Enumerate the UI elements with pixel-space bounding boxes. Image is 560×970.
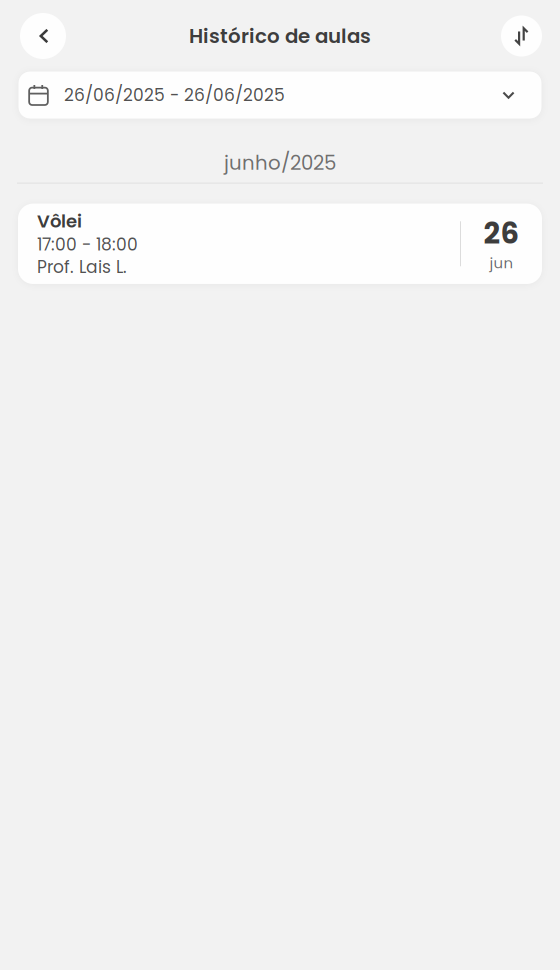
- staticText: Vôlei: [37, 209, 82, 233]
- staticText: 26/06/2025 - 26/06/2025: [64, 83, 285, 107]
- staticText: Prof. Lais L.: [37, 256, 127, 278]
- staticText: junho/2025: [224, 149, 336, 177]
- button[interactable]: 26/06/2025 - 26/06/2025: [18, 71, 542, 119]
- button[interactable]: Vôlei: [18, 204, 542, 284]
- staticText: jun: [489, 254, 513, 272]
- button[interactable]: Back: [20, 13, 66, 59]
- staticText: 17:00 - 18:00: [37, 233, 138, 256]
- button[interactable]: Sort order: [501, 15, 542, 56]
- staticText: 26: [483, 215, 519, 252]
- staticText: Histórico de aulas: [189, 22, 371, 50]
